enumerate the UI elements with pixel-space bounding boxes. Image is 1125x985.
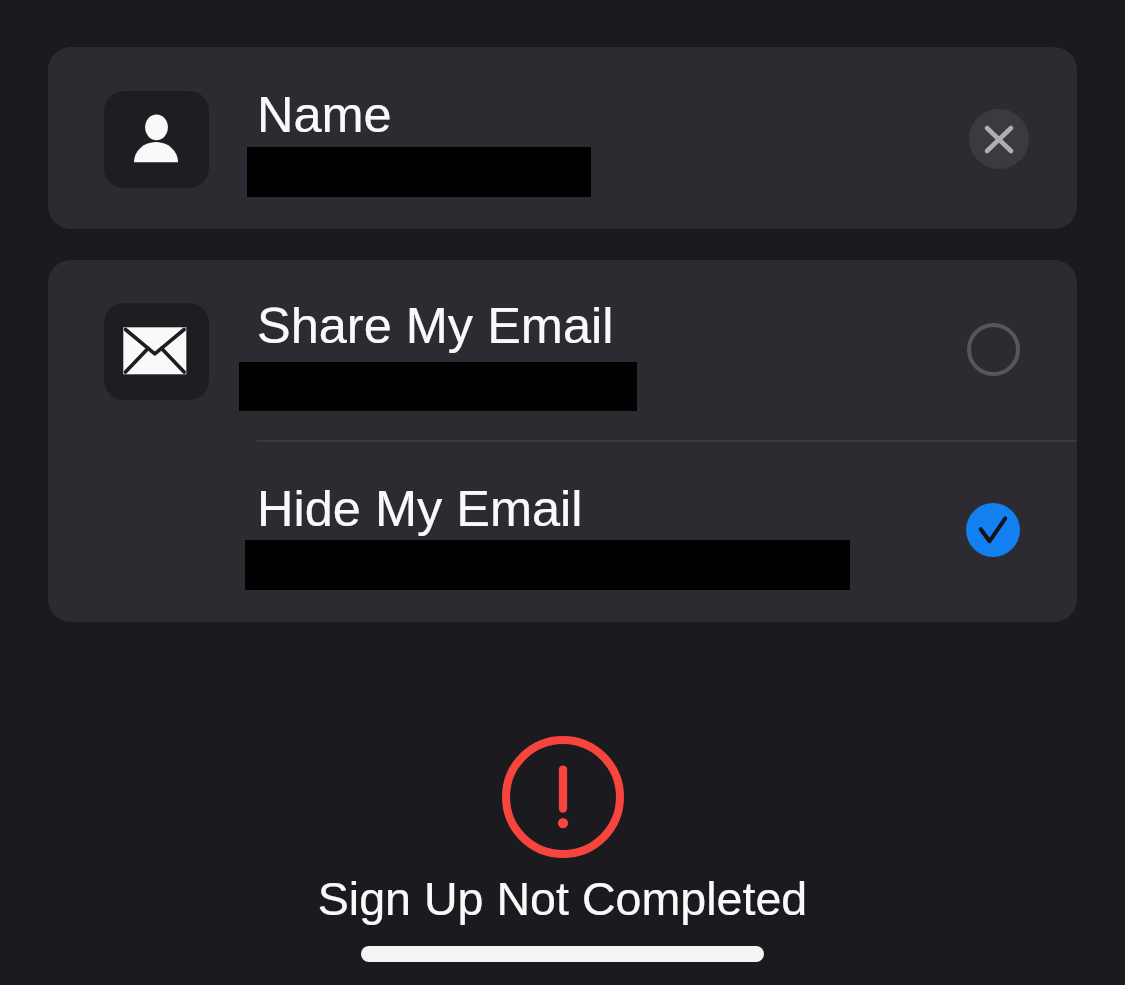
staticText: Sign Up Not Completed [0,873,1125,925]
staticText: Hide My Email [257,480,583,536]
staticText: Name [257,86,392,142]
button[interactable]: Share My Email, not selected [960,316,1026,382]
button[interactable]: Hide My Email [48,442,1077,622]
button[interactable]: Share My Email [48,260,1077,441]
button[interactable]: Name [48,47,1077,229]
button[interactable]: Hide My Email, selected [960,497,1026,563]
staticText: Share My Email [257,297,614,353]
button[interactable]: Clear name [969,109,1029,169]
